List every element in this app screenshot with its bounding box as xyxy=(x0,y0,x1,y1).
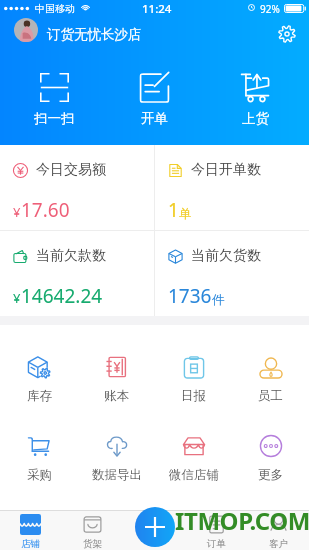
staticText: 上货 xyxy=(242,110,269,127)
staticText: 数据导出 xyxy=(92,467,142,483)
staticText: 1736 xyxy=(168,283,212,309)
staticText: 今日开单数 xyxy=(191,161,261,179)
staticText: 扫一扫 xyxy=(34,110,75,127)
button[interactable]: 更多 xyxy=(232,404,309,483)
button[interactable]: 当前欠货数 xyxy=(155,231,309,316)
button[interactable]: 客户 xyxy=(247,510,309,550)
staticText: 订单 xyxy=(207,538,226,550)
button[interactable]: 今日开单数 xyxy=(155,145,309,230)
button[interactable]: 货架 xyxy=(61,510,123,550)
button[interactable]: 上货 xyxy=(205,0,306,145)
staticText: 单 xyxy=(179,206,192,222)
button[interactable]: 员工 xyxy=(232,325,309,404)
button[interactable]: 开单 xyxy=(104,0,205,145)
staticText: ITMOP.COM xyxy=(175,504,309,537)
staticText: 17.60 xyxy=(21,197,70,223)
button[interactable]: 店铺 xyxy=(0,510,61,550)
staticText: 当前欠货数 xyxy=(191,247,261,265)
button[interactable]: 微信店铺 xyxy=(155,404,232,483)
staticText: 店铺 xyxy=(21,538,40,550)
staticText: 客户 xyxy=(269,538,288,550)
staticText: 货架 xyxy=(83,538,102,550)
button[interactable]: 账本 xyxy=(78,325,155,404)
staticText: 订货无忧长沙店 xyxy=(47,26,142,43)
button[interactable]: Profile xyxy=(14,18,38,42)
staticText: 92% xyxy=(260,2,280,16)
staticText: 1 xyxy=(168,197,179,223)
staticText: 中国移动 xyxy=(35,2,75,15)
staticText: 库存 xyxy=(27,388,52,404)
staticText: 日报 xyxy=(181,388,206,404)
staticText: 采购 xyxy=(27,467,52,483)
staticText: 微信店铺 xyxy=(169,467,219,483)
button[interactable]: Add xyxy=(135,507,175,547)
staticText: ¥ xyxy=(13,289,21,307)
button[interactable]: 今日交易额 xyxy=(0,145,154,230)
button[interactable]: 扫一扫 xyxy=(4,0,104,145)
staticText: 11:24 xyxy=(142,1,172,17)
staticText: 更多 xyxy=(258,467,283,483)
staticText: 开单 xyxy=(141,110,168,127)
staticText: 今日交易额 xyxy=(36,161,106,179)
button[interactable]: 日报 xyxy=(155,325,232,404)
staticText: 账本 xyxy=(104,388,129,404)
staticText: 件 xyxy=(212,292,225,308)
staticText: 14642.24 xyxy=(21,283,103,309)
staticText: 当前欠款数 xyxy=(36,247,106,265)
button[interactable]: 数据导出 xyxy=(78,404,155,483)
button[interactable]: 订单 xyxy=(185,510,247,550)
staticText: 员工 xyxy=(258,388,283,404)
button[interactable]: 库存 xyxy=(0,325,78,404)
button[interactable]: 当前欠款数 xyxy=(0,231,154,316)
button[interactable]: 采购 xyxy=(0,404,78,483)
staticText: ¥ xyxy=(13,203,21,221)
button[interactable]: Settings xyxy=(274,21,300,47)
